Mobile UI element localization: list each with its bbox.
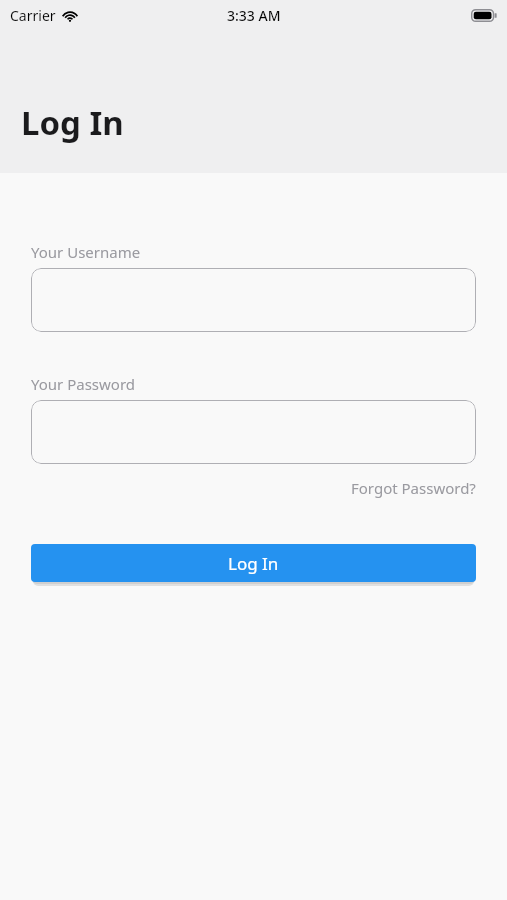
staticText: 3:33 AM bbox=[227, 6, 281, 25]
button[interactable]: Your Password input field bbox=[31, 400, 476, 464]
staticText: Your Password bbox=[31, 374, 136, 394]
button[interactable]: Your Username input field bbox=[31, 268, 476, 332]
button[interactable]: Log In bbox=[31, 544, 476, 582]
staticText: Log In bbox=[228, 552, 279, 575]
staticText: Your Username bbox=[31, 242, 141, 262]
staticText: Carrier bbox=[10, 6, 56, 25]
button[interactable]: Forgot Password? bbox=[349, 476, 478, 500]
staticText: Log In bbox=[21, 100, 124, 145]
staticText: Forgot Password? bbox=[351, 478, 476, 498]
